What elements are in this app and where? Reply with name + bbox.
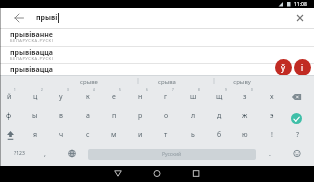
staticText: 4 (93, 88, 95, 92)
staticText: к (86, 92, 90, 102)
button[interactable]: я (22, 125, 48, 144)
button[interactable]: . (260, 144, 280, 163)
staticText: ы (32, 111, 38, 121)
staticText: прывіванне (10, 30, 53, 40)
button[interactable]: к (75, 87, 101, 106)
button[interactable]: ы (22, 106, 48, 125)
staticText: й (7, 92, 12, 102)
button[interactable]: н (127, 87, 153, 106)
button[interactable]: е (101, 87, 127, 106)
button[interactable] (184, 166, 208, 182)
button[interactable]: ц (22, 87, 48, 106)
button[interactable]: і (294, 59, 311, 76)
button[interactable]: м (101, 125, 127, 144)
staticText: э (270, 111, 274, 121)
button[interactable]: ж (232, 106, 258, 125)
button[interactable]: прывівацца (0, 47, 314, 63)
button[interactable]: ?123 (5, 144, 33, 163)
button[interactable] (145, 166, 169, 182)
button[interactable] (286, 144, 308, 163)
staticText: с (86, 130, 90, 140)
staticText: щ (216, 92, 223, 102)
button[interactable]: ў (275, 59, 292, 76)
staticText: і (301, 62, 304, 73)
staticText: п (112, 111, 117, 121)
button[interactable]: ю (232, 125, 258, 144)
staticText: БЕЛАРУСКА-РУСКІ (10, 38, 54, 43)
staticText: ш (190, 92, 197, 102)
button[interactable]: о (153, 106, 179, 125)
button[interactable]: х (259, 87, 285, 106)
button[interactable]: и (127, 125, 153, 144)
button[interactable]: прывіванне (0, 29, 314, 46)
staticText: ч (59, 130, 64, 140)
staticText: 6 (146, 88, 148, 92)
button[interactable]: т (153, 125, 179, 144)
button[interactable]: ! (259, 125, 285, 144)
staticText: в (59, 111, 63, 121)
staticText: р (138, 111, 143, 121)
staticText: ж (242, 111, 248, 121)
button[interactable]: а (75, 106, 101, 125)
button[interactable]: э (259, 106, 285, 125)
staticText: срыву (233, 78, 251, 86)
staticText: 3 (67, 88, 69, 92)
staticText: ф (6, 111, 12, 121)
staticText: БЕЛАРУСКА-РУСКІ (10, 56, 54, 61)
button[interactable]: ф (0, 106, 22, 125)
button[interactable] (106, 166, 130, 182)
staticText: Русский (162, 151, 182, 158)
staticText: т (164, 130, 168, 140)
staticText: срыве (80, 78, 98, 86)
staticText: ў (281, 62, 286, 73)
staticText: о (164, 111, 169, 121)
staticText: л (191, 111, 196, 121)
staticText: 5 (119, 88, 121, 92)
staticText: а (86, 111, 90, 121)
staticText: 11:08 (294, 1, 307, 8)
button[interactable]: Русский (88, 149, 256, 160)
staticText: 1 (14, 88, 16, 92)
button[interactable]: прыві (0, 8, 314, 28)
button[interactable]: с (75, 125, 101, 144)
staticText: 2 (41, 88, 43, 92)
staticText: ц (33, 92, 38, 102)
staticText: м (111, 130, 117, 140)
button[interactable]: ш (180, 87, 206, 106)
button[interactable]: , (34, 144, 56, 163)
button[interactable] (0, 125, 26, 144)
staticText: ь (191, 130, 195, 140)
button[interactable]: з (232, 87, 258, 106)
button[interactable]: п (101, 106, 127, 125)
button[interactable] (291, 113, 302, 124)
staticText: 7 (172, 88, 174, 92)
button[interactable]: б (206, 125, 232, 144)
staticText: прыві (36, 13, 58, 23)
button[interactable]: л (180, 106, 206, 125)
staticText: , (44, 149, 46, 159)
button[interactable] (285, 87, 311, 106)
staticText: ю (242, 130, 248, 140)
staticText: н (138, 92, 143, 102)
button[interactable]: р (127, 106, 153, 125)
button[interactable]: ? (285, 125, 311, 144)
staticText: срыва (158, 78, 176, 86)
button[interactable]: в (48, 106, 74, 125)
button[interactable]: щ (206, 87, 232, 106)
button[interactable]: й (0, 87, 22, 106)
button[interactable]: прывівацца (0, 64, 314, 75)
button[interactable]: ч (48, 125, 74, 144)
button[interactable]: д (206, 106, 232, 125)
staticText: у (59, 92, 63, 102)
staticText: б (217, 130, 222, 140)
button[interactable]: ь (180, 125, 206, 144)
button[interactable]: г (153, 87, 179, 106)
staticText: 8 (198, 88, 200, 92)
staticText: 9 (225, 88, 227, 92)
staticText: прывівацца (10, 65, 53, 75)
staticText: 0 (251, 88, 253, 92)
staticText: е (112, 92, 116, 102)
button[interactable]: у (48, 87, 74, 106)
staticText: г (164, 92, 168, 102)
staticText: ?123 (14, 150, 25, 157)
